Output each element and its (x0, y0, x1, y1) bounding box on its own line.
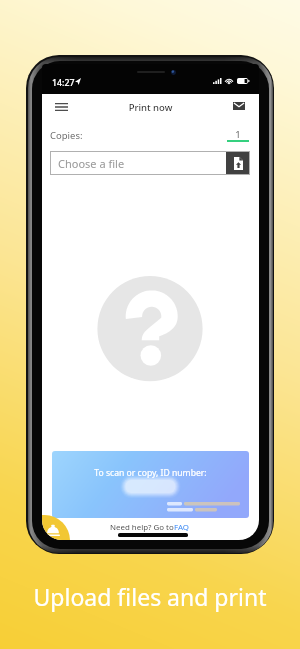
button[interactable]: Choose a file (50, 151, 250, 175)
staticText: 1 (227, 128, 249, 141)
button[interactable]: Print service (42, 515, 70, 540)
staticText: Copies: (50, 129, 83, 142)
button[interactable]: Menu (51, 101, 72, 112)
staticText: Print now (42, 101, 259, 113)
staticText: To scan or copy, ID number: (52, 467, 249, 479)
staticText: Need help? Go to (110, 522, 176, 533)
staticText: FAQ (174, 522, 189, 533)
button[interactable]: Mail (229, 98, 249, 114)
staticText: Upload files and print (0, 581, 300, 612)
button[interactable]: Upload file (226, 151, 250, 175)
staticText: Choose a file (58, 156, 125, 171)
button[interactable]: 1 (227, 128, 249, 142)
button[interactable]: To scan or copy, ID number: (52, 451, 249, 518)
staticText: 14:27 (52, 77, 75, 89)
button[interactable]: Need help? Go to (105, 522, 195, 533)
